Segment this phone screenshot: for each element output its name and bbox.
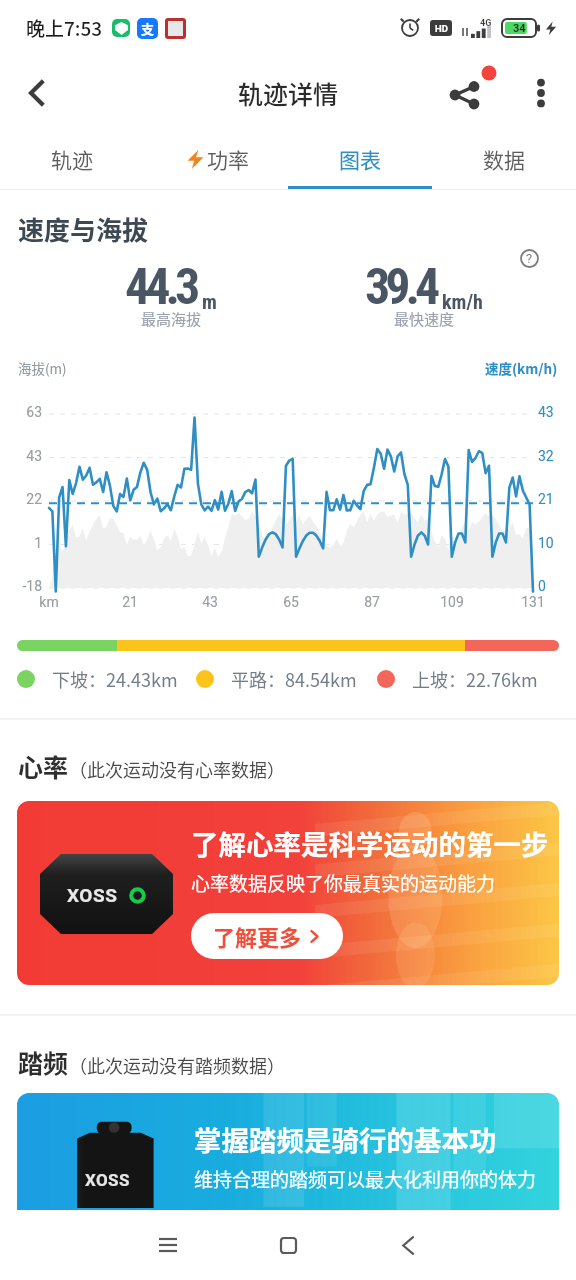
staticText: 下坡：24.43km bbox=[52, 666, 178, 692]
staticText: 支 bbox=[141, 19, 155, 38]
staticText: 32 bbox=[538, 448, 576, 464]
staticText: -18 bbox=[0, 578, 42, 594]
staticText: 功率 bbox=[207, 144, 249, 174]
staticText: 63 bbox=[0, 404, 42, 420]
staticText: 43 bbox=[538, 404, 576, 420]
staticText: km/h bbox=[442, 290, 483, 313]
button[interactable]: More options bbox=[518, 70, 564, 116]
button[interactable]: Back bbox=[12, 68, 62, 118]
staticText: 海拔(m) bbox=[18, 358, 67, 378]
staticText: 踏频 bbox=[18, 1044, 69, 1080]
staticText: 39.4 bbox=[365, 258, 436, 317]
staticText: 数据 bbox=[483, 144, 525, 174]
button[interactable]: Help bbox=[512, 241, 546, 275]
staticText: （此次运动没有踏频数据） bbox=[69, 1052, 285, 1078]
button[interactable]: XOSS bbox=[17, 1093, 559, 1277]
staticText: 10 bbox=[538, 535, 576, 551]
staticText: 最高海拔 bbox=[141, 308, 202, 330]
button[interactable]: 数据 bbox=[432, 130, 576, 190]
staticText: XOSS bbox=[85, 1170, 130, 1190]
staticText: 上坡：22.76km bbox=[412, 666, 538, 692]
staticText: 图表 bbox=[339, 144, 381, 174]
staticText: 1 bbox=[0, 535, 42, 551]
staticText: 维持合理的踏频可以最大化利用你的体力 bbox=[194, 1165, 537, 1193]
staticText: 21 bbox=[538, 491, 576, 507]
staticText: 65 bbox=[271, 594, 311, 610]
staticText: （此次运动没有心率数据） bbox=[69, 756, 285, 782]
staticText: 87 bbox=[352, 594, 392, 610]
staticText: 了解心率是科学运动的第一步 bbox=[191, 823, 549, 863]
staticText: HD bbox=[435, 23, 448, 34]
staticText: 4G bbox=[480, 18, 492, 29]
staticText: 22 bbox=[0, 491, 42, 507]
staticText: km bbox=[29, 594, 69, 610]
staticText: 0 bbox=[538, 578, 576, 594]
staticText: 最快速度 bbox=[394, 308, 455, 330]
staticText: ? bbox=[526, 251, 533, 266]
button[interactable]: 图表 bbox=[288, 130, 432, 190]
staticText: 44.3 bbox=[125, 258, 196, 317]
staticText: 轨迹 bbox=[51, 144, 93, 174]
button[interactable]: 了解更多 bbox=[191, 913, 343, 959]
button[interactable]: XOSS bbox=[17, 801, 559, 985]
button[interactable]: 轨迹 bbox=[0, 130, 144, 190]
staticText: XOSS bbox=[67, 884, 118, 906]
staticText: 43 bbox=[0, 448, 42, 464]
staticText: 轨迹详情 bbox=[238, 75, 339, 111]
staticText: m bbox=[202, 290, 217, 313]
button[interactable]: Home bbox=[228, 1215, 348, 1275]
staticText: 平路：84.54km bbox=[231, 666, 357, 692]
staticText: 速度与海拔 bbox=[18, 210, 149, 248]
staticText: 34 bbox=[513, 22, 526, 35]
staticText: 心率 bbox=[18, 748, 69, 784]
button[interactable]: Recent apps bbox=[108, 1215, 228, 1275]
staticText: 掌握踏频是骑行的基本功 bbox=[194, 1119, 497, 1159]
staticText: 43 bbox=[190, 594, 230, 610]
staticText: 131 bbox=[513, 594, 553, 610]
staticText: 21 bbox=[110, 594, 150, 610]
staticText: 晚上7:53 bbox=[26, 14, 103, 42]
staticText: 109 bbox=[432, 594, 472, 610]
staticText: 速度(km/h) bbox=[485, 358, 558, 378]
button[interactable]: 功率 bbox=[144, 130, 288, 190]
button[interactable]: Back bbox=[348, 1215, 468, 1275]
staticText: 心率数据反映了你最真实的运动能力 bbox=[191, 869, 496, 897]
staticText: 了解更多 bbox=[213, 920, 302, 952]
button[interactable]: Share bbox=[450, 67, 502, 119]
